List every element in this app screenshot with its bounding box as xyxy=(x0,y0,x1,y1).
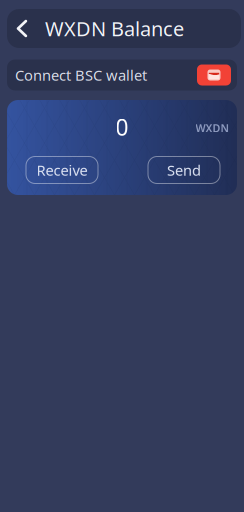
button[interactable]: Send xyxy=(148,156,220,183)
staticText: Receive xyxy=(36,160,87,180)
button[interactable]: Back xyxy=(11,13,33,43)
staticText: Connect BSC wallet xyxy=(15,65,147,85)
button[interactable]: Receive xyxy=(26,156,98,183)
staticText: 0 xyxy=(115,112,128,142)
staticText: Send xyxy=(167,160,201,180)
button[interactable]: Connect BSC wallet xyxy=(197,64,231,85)
staticText: WXDN xyxy=(195,121,228,135)
staticText: WXDN Balance xyxy=(45,15,184,42)
